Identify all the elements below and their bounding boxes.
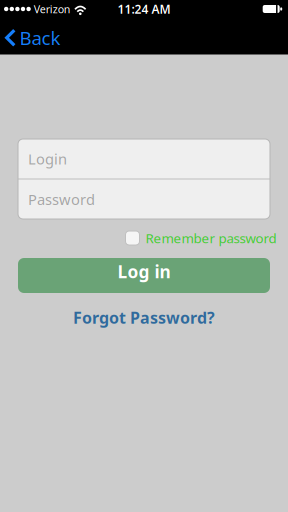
- button[interactable]: Password: [18, 179, 270, 219]
- button[interactable]: Forgot Password?: [73, 307, 215, 328]
- button[interactable]: Log in: [18, 258, 270, 293]
- staticText: Forgot Password?: [73, 307, 215, 328]
- staticText: 11:24 AM: [117, 1, 170, 17]
- button[interactable]: Remember password: [125, 231, 276, 245]
- staticText: Log in: [117, 260, 170, 283]
- staticText: Back: [19, 25, 60, 50]
- staticText: Verizon: [34, 2, 71, 16]
- staticText: Remember password: [145, 229, 276, 247]
- button[interactable]: Back: [0, 22, 68, 50]
- button[interactable]: Login: [18, 139, 270, 178]
- staticText: Login: [28, 149, 67, 168]
- staticText: Password: [28, 189, 95, 209]
